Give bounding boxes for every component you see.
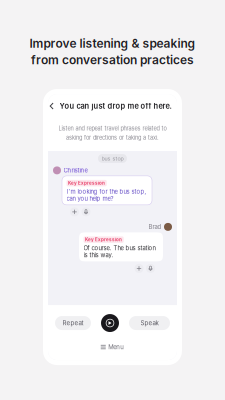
staticText: Listen and repeat travel phrases related… xyxy=(58,125,166,132)
button[interactable]: Listen xyxy=(81,207,90,216)
button[interactable]: Back xyxy=(49,100,55,112)
staticText: Of course. The bus station is this way. xyxy=(83,244,155,259)
staticText: Improve listening & speaking xyxy=(29,36,195,50)
staticText: bus stop xyxy=(101,155,123,162)
button[interactable]: Menu xyxy=(48,341,177,353)
staticText: You can just drop me off here. xyxy=(59,101,171,110)
staticText: from conversation practices xyxy=(31,52,194,67)
button[interactable]: Save phrase xyxy=(70,207,79,216)
staticText: Key Expression xyxy=(85,237,122,242)
button[interactable]: Play xyxy=(101,314,119,332)
staticText: Brad xyxy=(148,223,161,230)
button[interactable]: Listen xyxy=(146,264,155,273)
staticText: asking for directions or taking a taxi. xyxy=(66,134,159,141)
staticText: Menu xyxy=(108,343,124,351)
button[interactable]: Repeat xyxy=(55,316,91,330)
button[interactable]: Save phrase xyxy=(134,264,143,273)
staticText: Repeat xyxy=(62,319,83,327)
staticText: I'm looking for the bus stop, can you he… xyxy=(66,188,146,202)
staticText: Key Expression xyxy=(68,180,105,186)
staticText: Christine xyxy=(63,167,87,174)
button[interactable]: Speak xyxy=(129,316,170,330)
staticText: Speak xyxy=(140,319,158,327)
